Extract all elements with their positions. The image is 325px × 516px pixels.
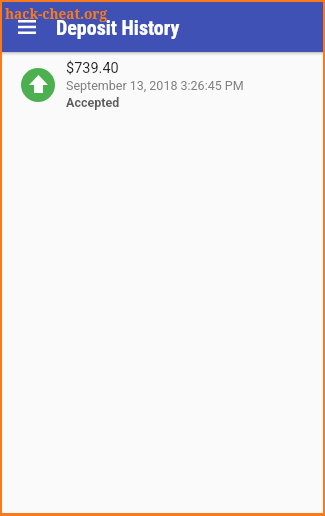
staticText: Deposit History — [56, 16, 180, 39]
button[interactable]: Open navigation menu — [14, 14, 40, 40]
staticText: hack-cheat.org — [5, 4, 107, 23]
staticText: Accepted — [66, 95, 120, 110]
staticText: September 13, 2018 3:26:45 PM — [66, 78, 244, 93]
staticText: $739.40 — [66, 60, 119, 77]
button[interactable]: $739.40 — [2, 56, 323, 110]
